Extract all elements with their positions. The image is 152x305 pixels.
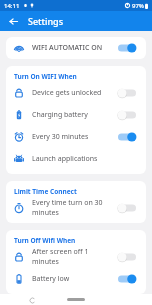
staticText: 14:11 — [4, 2, 20, 10]
staticText: Settings — [28, 15, 64, 27]
staticText: Turn On WIFI When — [14, 72, 77, 81]
staticText: Launch applications — [32, 154, 138, 164]
staticText: Limit Time Connect — [14, 187, 77, 196]
button[interactable]: Device gets unlocked — [6, 82, 146, 104]
staticText: Charging battery — [32, 110, 116, 120]
button[interactable]: Home — [64, 294, 88, 305]
button[interactable]: Every time turn on 30 minutes — [6, 197, 146, 219]
button[interactable]: After screen off 1 minutes — [6, 246, 146, 268]
button[interactable]: Charging battery — [6, 104, 146, 126]
button[interactable]: WIFI AUTOMATIC ON — [6, 37, 146, 59]
staticText: Turn Off Wifi When — [14, 236, 76, 245]
staticText: Every 30 minutes — [32, 132, 116, 142]
staticText: Device gets unlocked — [32, 88, 116, 98]
button[interactable]: Every 30 minutes — [6, 126, 146, 148]
staticText: Battery low — [32, 274, 116, 284]
staticText: After screen off 1 minutes — [32, 247, 116, 267]
staticText: Every time turn on 30 minutes — [32, 198, 116, 218]
button[interactable]: Battery low — [6, 268, 146, 290]
button[interactable]: Back — [27, 295, 37, 305]
button[interactable]: Launch applications — [6, 148, 146, 170]
button[interactable]: Back — [6, 14, 20, 28]
staticText: 97% — [132, 2, 144, 10]
staticText: WIFI AUTOMATIC ON — [32, 43, 116, 53]
